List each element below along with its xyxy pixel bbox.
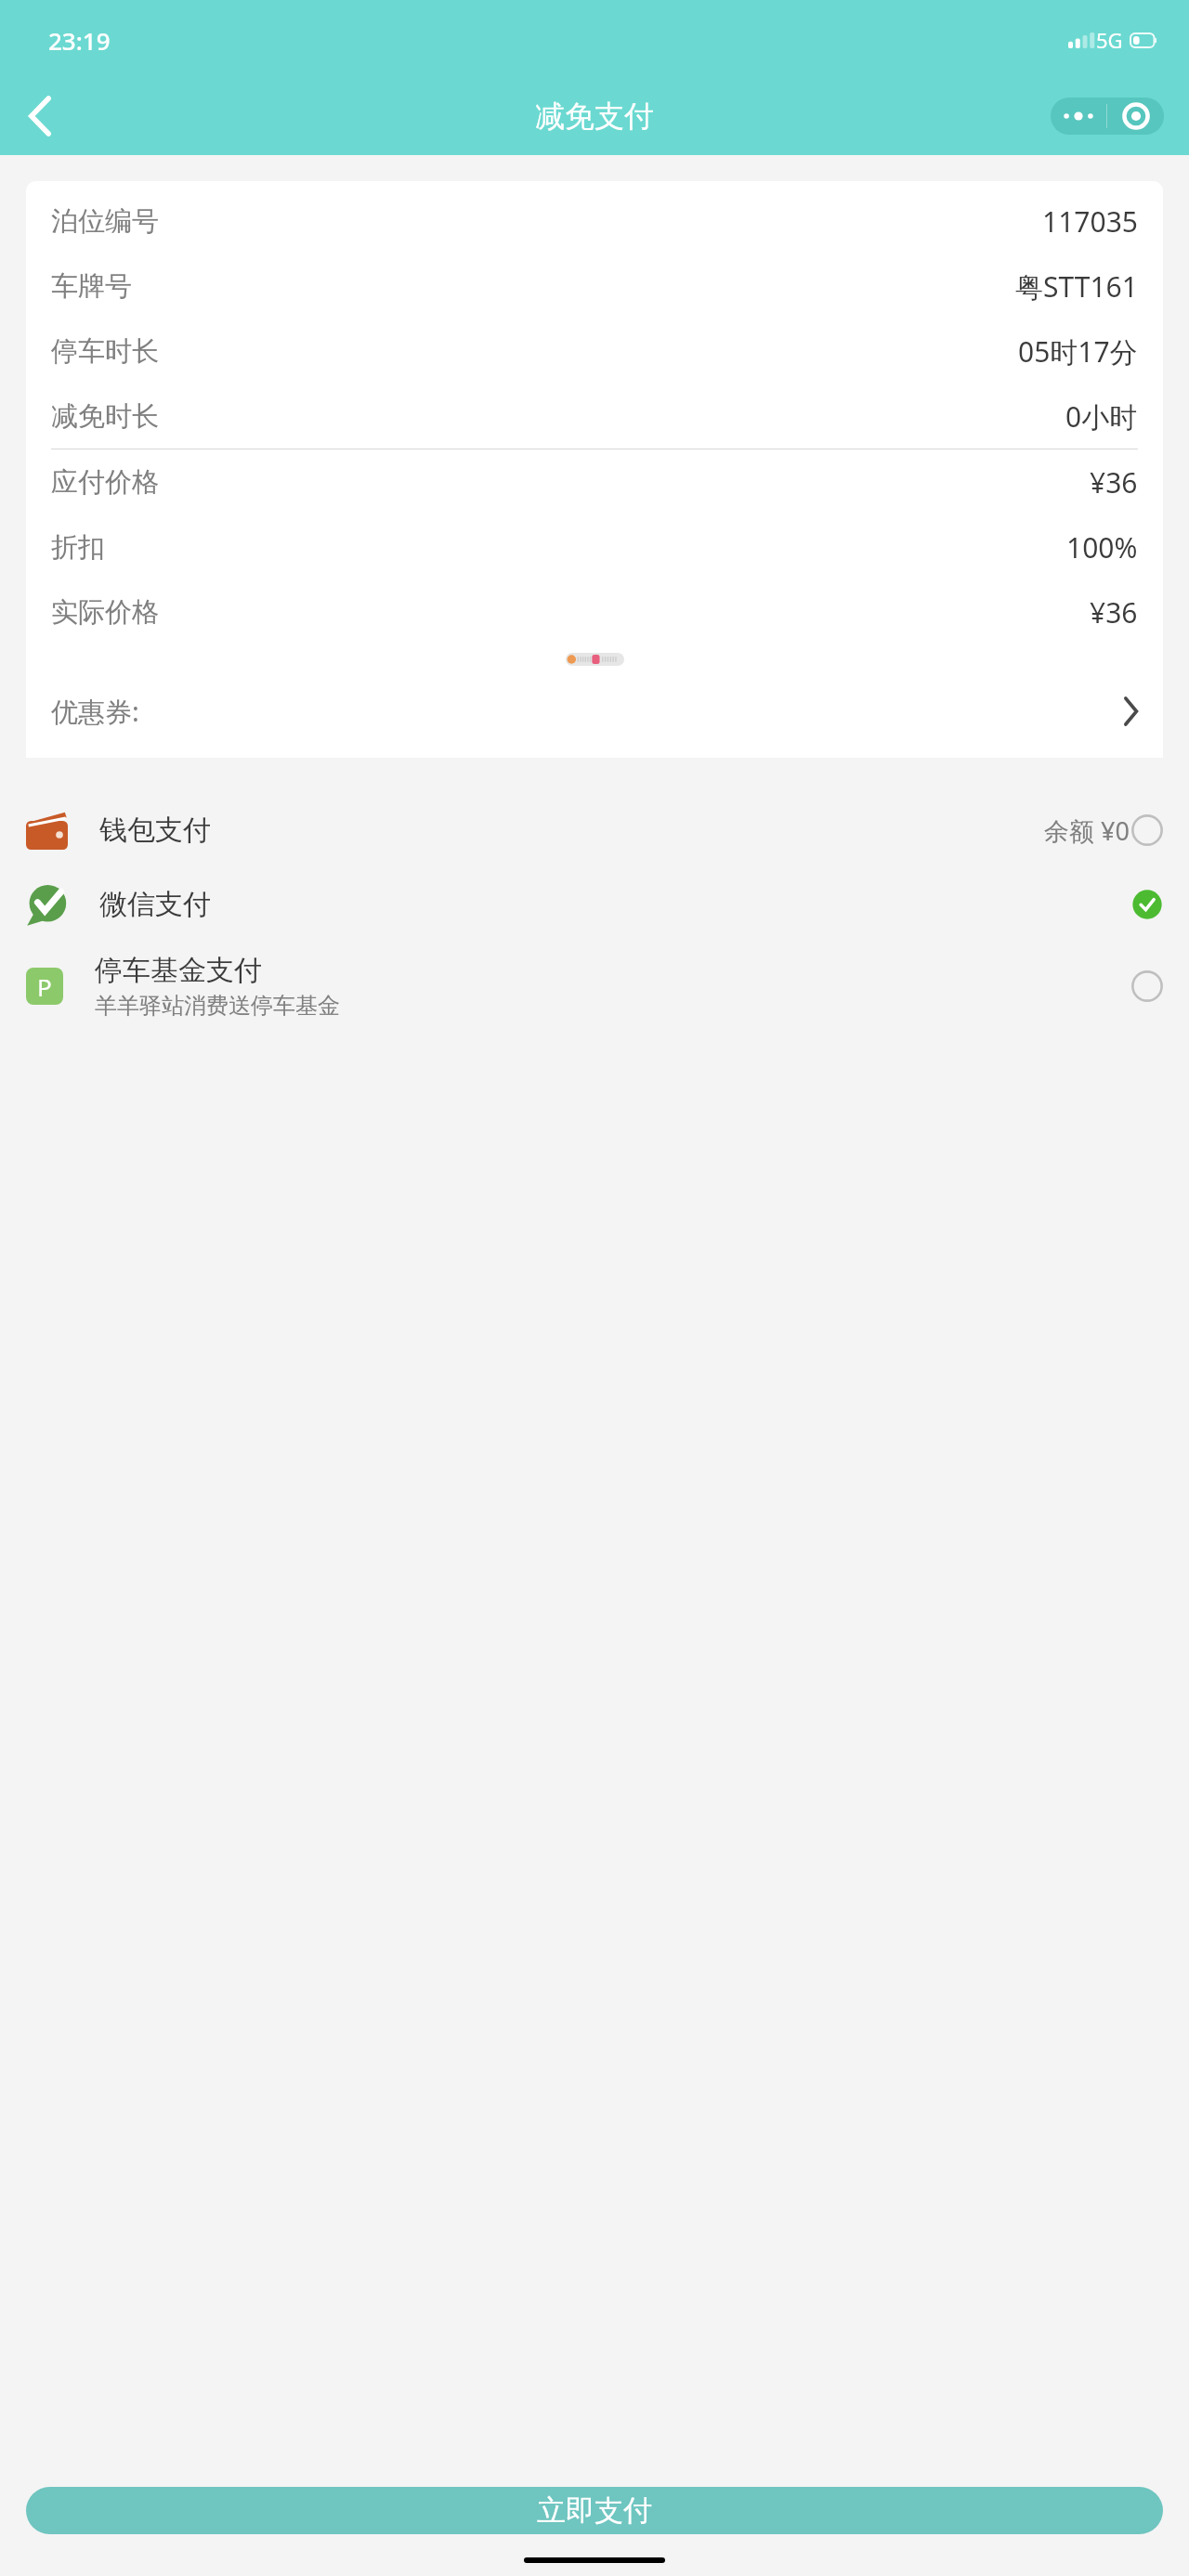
staticText: 应付价格 [51, 465, 159, 500]
staticText: 0小时 [1065, 397, 1138, 436]
button[interactable]: Not selected [1131, 814, 1163, 846]
staticText: 100% [1066, 528, 1138, 566]
button[interactable]: Not selected [1131, 970, 1163, 1002]
staticText: 车牌号 [51, 269, 132, 304]
staticText: 余额 ¥0 [1044, 813, 1130, 848]
button[interactable]: 立即支付 [26, 2487, 1163, 2534]
staticText: 羊羊驿站消费送停车基金 [95, 992, 340, 1020]
staticText: 05时17分 [1018, 332, 1138, 371]
button[interactable]: Back [11, 87, 69, 145]
staticText: 减免时长 [51, 399, 159, 434]
button[interactable]: 钱包支付 [0, 798, 1189, 863]
button[interactable]: More [1051, 98, 1106, 135]
staticText: 折扣 [51, 530, 105, 565]
button[interactable]: P [0, 944, 1189, 1028]
staticText: 23:19 [48, 24, 111, 57]
staticText: 立即支付 [537, 2492, 652, 2529]
staticText: 5G [1096, 26, 1123, 54]
staticText: 钱包支付 [99, 813, 211, 848]
staticText: 117035 [1042, 202, 1138, 241]
button[interactable]: Selected [1131, 889, 1163, 920]
staticText: 泊位编号 [51, 204, 159, 239]
staticText: 停车时长 [51, 334, 159, 369]
staticText: 减免支付 [535, 98, 654, 135]
staticText: 微信支付 [99, 887, 211, 922]
staticText: 停车基金支付 [95, 953, 262, 988]
staticText: P [37, 970, 52, 1003]
staticText: ¥36 [1090, 463, 1138, 501]
staticText: 优惠券: [51, 693, 139, 730]
button[interactable]: 优惠券: [26, 665, 1163, 758]
button[interactable]: Close mini program [1107, 98, 1164, 135]
staticText: 实际价格 [51, 595, 159, 630]
staticText: ¥36 [1090, 593, 1138, 631]
button[interactable]: 微信支付 [0, 872, 1189, 937]
staticText: 粤STT161 [1015, 267, 1138, 306]
